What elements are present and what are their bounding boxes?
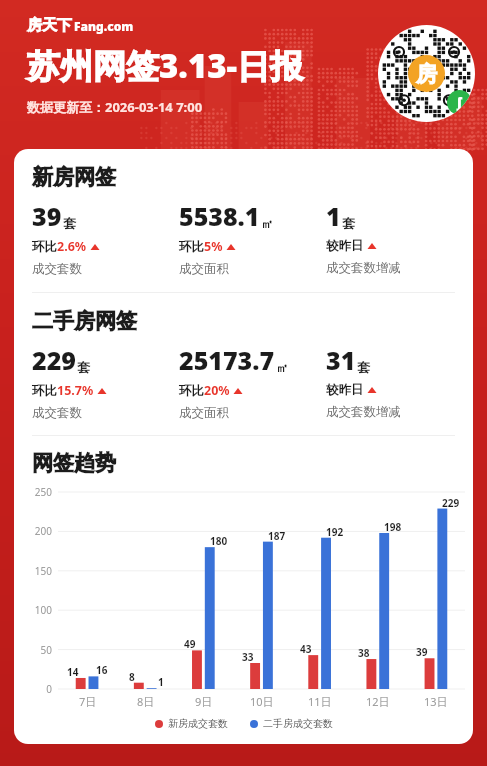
staticText: 25173.7 [179,343,275,377]
button[interactable]: 扫描二维码关注房天下 [378,25,475,122]
staticText: 套 [357,359,370,375]
staticText: 成交套数 [32,405,82,421]
staticText: 39 [32,199,62,233]
button[interactable]: 房天下 [27,16,134,35]
staticText: 成交面积 [179,261,229,277]
staticText: 环比 [32,239,57,255]
button[interactable]: 229 [32,343,179,421]
staticText: 38 [358,646,370,660]
staticText: 成交套数增减 [326,404,401,420]
staticText: 环比 [32,383,57,399]
staticText: 较昨日 [326,382,364,398]
staticText: 5538.1 [179,199,260,233]
staticText: 192 [326,525,344,539]
staticText: 229 [32,343,76,377]
button[interactable]: 新房成交套数 [155,717,228,730]
staticText: 150 [20,564,52,578]
staticText: ㎡ [276,360,288,375]
staticText: 12日 [366,694,390,709]
staticText: 较昨日 [326,238,364,254]
staticText: 套 [63,215,76,231]
staticText: 250 [20,485,52,499]
staticText: 16 [96,663,108,677]
staticText: 50 [20,643,52,657]
button[interactable]: 二手房成交套数 [250,717,333,730]
staticText: 2.6% [57,238,87,255]
staticText: 二手房网签 [32,308,137,334]
staticText: 5% [204,238,223,255]
staticText: 14 [67,665,79,679]
staticText: 房 [416,61,437,87]
button[interactable]: 1 [326,199,465,276]
staticText: 33 [242,650,254,664]
staticText: 环比 [179,383,204,399]
staticText: 套 [342,215,355,231]
staticText: 8日 [137,694,155,709]
staticText: 180 [210,534,228,548]
staticText: 13日 [424,694,448,709]
staticText: 套 [77,359,90,375]
button[interactable]: 31 [326,343,465,420]
staticText: 成交面积 [179,405,229,421]
staticText: 187 [268,529,286,543]
staticText: 100 [20,603,52,617]
staticText: 43 [300,642,312,656]
staticText: 11日 [308,694,332,709]
staticText: 1 [158,675,164,689]
staticText: 数据更新至：2026-03-14 7:00 [27,98,203,116]
staticText: 49 [184,637,196,651]
staticText: 苏州网签3.13-日报 [27,43,304,88]
staticText: 二手房成交套数 [263,717,333,730]
staticText: 0 [20,682,52,696]
staticText: 成交套数增减 [326,260,401,276]
staticText: 39 [416,645,428,659]
button[interactable]: 25173.7 [179,343,326,421]
staticText: 成交套数 [32,261,82,277]
staticText: 网签趋势 [32,450,116,476]
staticText: 7日 [79,694,97,709]
staticText: 10日 [250,694,274,709]
staticText: 新房成交套数 [168,717,228,730]
button[interactable]: 5538.1 [179,199,326,277]
staticText: 8 [129,670,135,684]
staticText: 房天下 [27,16,72,35]
staticText: 1 [326,199,341,233]
staticText: 9日 [195,694,213,709]
staticText: ㎡ [261,216,273,231]
staticText: 198 [384,520,402,534]
staticText: 新房网签 [32,164,116,190]
staticText: 环比 [179,239,204,255]
staticText: 31 [326,343,356,377]
staticText: 200 [20,524,52,538]
staticText: Fang.com [74,18,134,34]
staticText: 15.7% [57,382,94,399]
staticText: 229 [442,496,460,510]
staticText: ʃ [457,93,462,112]
button[interactable]: 39 [32,199,179,277]
staticText: 20% [204,382,230,399]
